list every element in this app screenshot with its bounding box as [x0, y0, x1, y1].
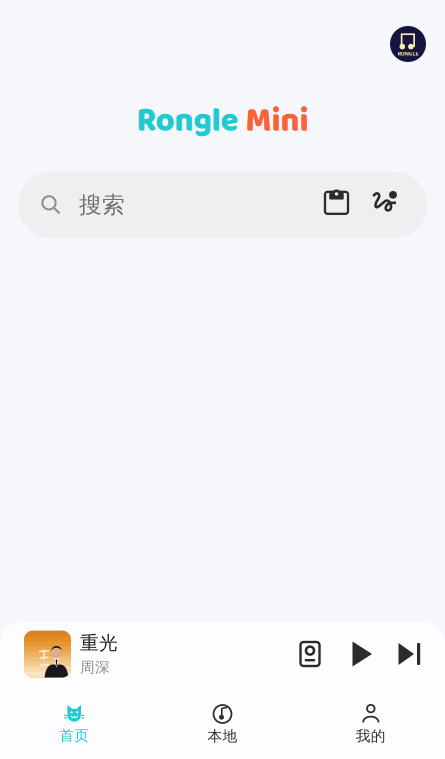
staticText: Rongle: [136, 95, 238, 147]
button[interactable]: 我的: [297, 704, 445, 745]
staticText: Mini: [245, 95, 308, 147]
staticText: 首页: [59, 726, 89, 744]
button[interactable]: Clipboard: [325, 193, 348, 217]
staticText: 本地: [207, 727, 237, 745]
button[interactable]: 本地: [148, 704, 297, 745]
button[interactable]: Next track: [398, 643, 421, 665]
button[interactable]: Play: [352, 641, 373, 666]
staticText: 周深: [80, 658, 110, 676]
staticText: 我的: [356, 727, 386, 745]
button[interactable]: Lyrics: [299, 641, 321, 667]
button[interactable]: 首页: [0, 704, 148, 744]
staticText: RONGLE: [397, 50, 418, 57]
staticText: 重光: [80, 631, 118, 654]
button[interactable]: Rongle account: [390, 26, 426, 62]
staticText: 搜索: [79, 191, 125, 219]
button[interactable]: Handwriting search: [372, 193, 398, 217]
